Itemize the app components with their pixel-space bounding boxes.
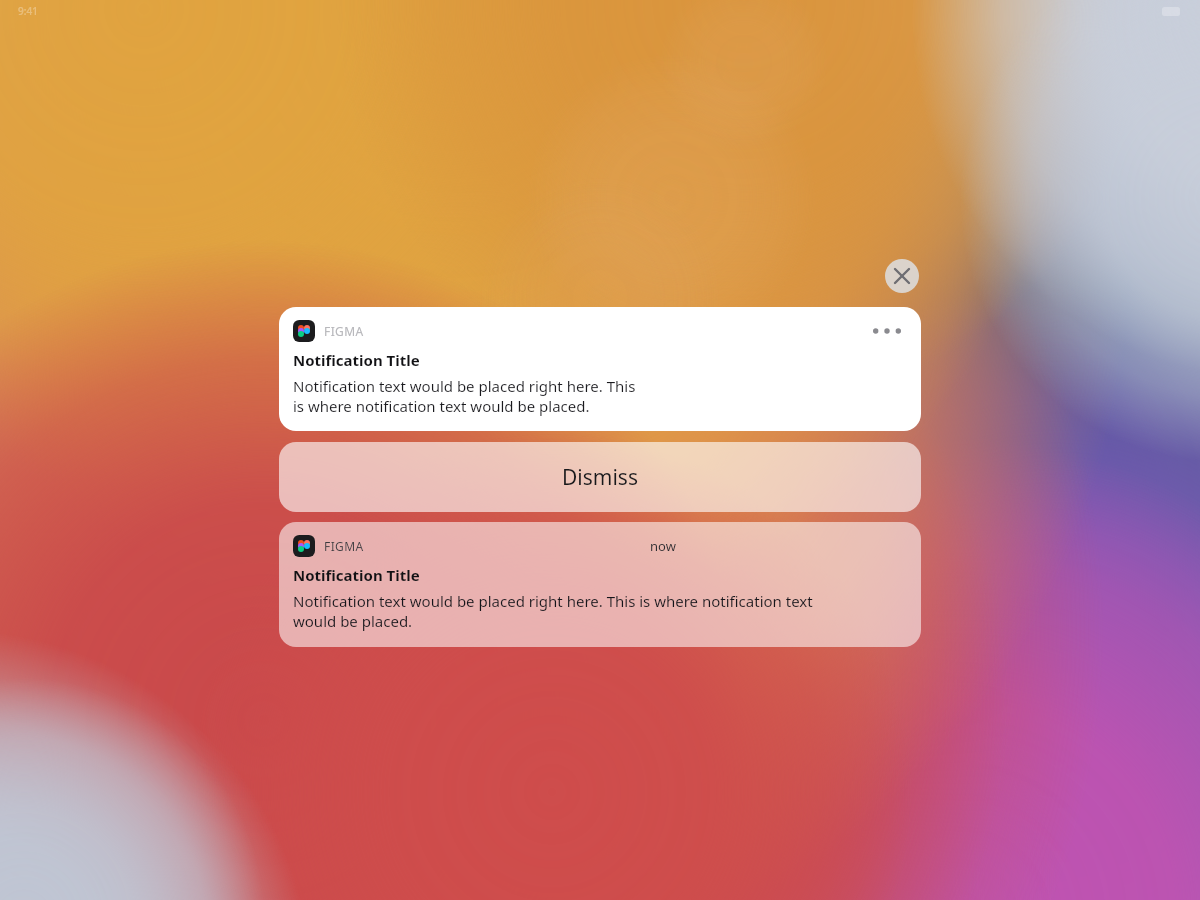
staticText: Notification text would be placed right … — [293, 591, 813, 631]
staticText: FIGMA — [324, 538, 364, 554]
staticText: Notification Title — [293, 565, 420, 585]
staticText: 9:41 — [18, 4, 38, 18]
staticText: FIGMA — [324, 323, 364, 339]
button[interactable]: FIGMA — [279, 307, 921, 431]
button[interactable]: FIGMA — [279, 522, 921, 647]
button[interactable]: More options — [867, 322, 907, 340]
staticText: Dismiss — [562, 463, 638, 492]
staticText: Notification Title — [293, 350, 420, 370]
button[interactable]: Close — [885, 259, 919, 293]
staticText: Notification text would be placed right … — [293, 376, 636, 416]
button[interactable]: Dismiss — [279, 442, 921, 512]
staticText: now — [650, 537, 676, 555]
